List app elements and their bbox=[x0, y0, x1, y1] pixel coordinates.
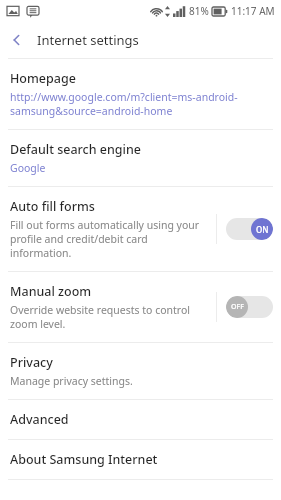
staticText: 11:17 AM bbox=[231, 4, 275, 18]
staticText: About Samsung Internet bbox=[10, 451, 158, 468]
staticText: OFF bbox=[231, 302, 244, 312]
button[interactable]: Homepage bbox=[0, 59, 281, 129]
staticText: Manage privacy settings. bbox=[10, 374, 133, 388]
staticText: http://www.google.com/m?client=ms-androi… bbox=[10, 90, 269, 118]
staticText: Manual zoom bbox=[10, 283, 92, 300]
staticText: Default search engine bbox=[10, 141, 141, 158]
button[interactable]: Advanced bbox=[0, 400, 281, 439]
button[interactable]: Auto fill forms bbox=[0, 187, 281, 271]
staticText: ON bbox=[256, 224, 269, 235]
staticText: Override website requests to control zoo… bbox=[10, 303, 208, 331]
staticText: Homepage bbox=[10, 70, 76, 87]
staticText: Google bbox=[10, 161, 46, 175]
button[interactable]: Privacy bbox=[0, 343, 281, 399]
button[interactable]: Toggle off bbox=[226, 296, 273, 318]
button[interactable]: Toggle on bbox=[226, 218, 273, 240]
staticText: Advanced bbox=[10, 411, 69, 428]
staticText: Internet settings bbox=[37, 31, 139, 49]
button[interactable]: About Samsung Internet bbox=[0, 440, 281, 479]
staticText: 81% bbox=[189, 4, 209, 18]
button[interactable]: Default search engine bbox=[0, 130, 281, 186]
button[interactable]: Back bbox=[0, 23, 34, 57]
staticText: Privacy bbox=[10, 354, 53, 371]
button[interactable]: Manual zoom bbox=[0, 272, 281, 342]
staticText: Auto fill forms bbox=[10, 198, 95, 215]
staticText: Fill out forms automatically using your … bbox=[10, 218, 208, 260]
